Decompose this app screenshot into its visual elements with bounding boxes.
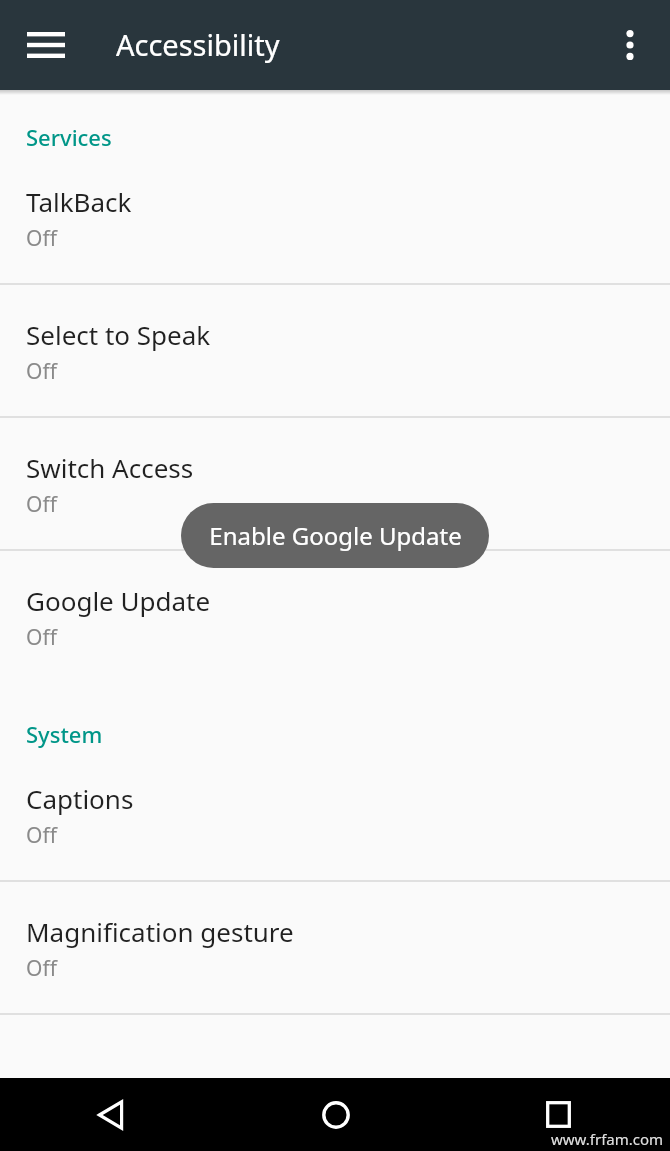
staticText: Off (26, 623, 57, 652)
button[interactable]: Recent apps (447, 1078, 670, 1151)
staticText: Enable Google Update (209, 519, 462, 552)
staticText: Magnification gesture (26, 914, 294, 949)
button[interactable]: Switch Access (0, 418, 670, 549)
button[interactable]: Magnification gesture (0, 882, 670, 1013)
button[interactable]: Select to Speak (0, 285, 670, 416)
staticText: Off (26, 954, 57, 983)
button[interactable]: Open navigation drawer (12, 11, 80, 79)
staticText: Off (26, 490, 57, 519)
staticText: Accessibility (116, 25, 280, 64)
staticText: Captions (26, 781, 134, 816)
staticText: Switch Access (26, 450, 194, 485)
button[interactable]: Google Update (0, 551, 670, 682)
staticText: Services (26, 122, 112, 152)
button[interactable]: TalkBack (0, 152, 670, 283)
button[interactable]: Home (224, 1078, 447, 1151)
button[interactable]: Captions (0, 749, 670, 880)
staticText: System (26, 719, 103, 749)
staticText: Off (26, 224, 57, 253)
button[interactable]: Back (0, 1078, 224, 1151)
staticText: www.frfam.com (551, 1129, 664, 1149)
staticText: Select to Speak (26, 317, 211, 352)
staticText: Off (26, 821, 57, 850)
button[interactable]: More options (598, 13, 662, 77)
staticText: TalkBack (26, 184, 132, 219)
staticText: Google Update (26, 583, 211, 618)
staticText: Off (26, 357, 57, 386)
